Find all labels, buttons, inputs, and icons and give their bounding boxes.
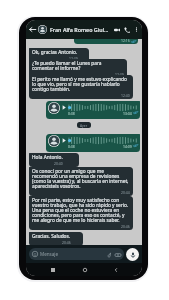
staticText: Ayer — [80, 123, 88, 127]
staticText: Hola Antonio. — [32, 154, 63, 161]
staticText: 12:39 — [115, 72, 124, 77]
staticText: 13:04 — [123, 111, 132, 116]
button[interactable]: More options — [132, 25, 141, 34]
staticText: Fran Alfa Romeo Giul… — [50, 26, 109, 33]
staticText: 20:44 — [121, 190, 130, 195]
button[interactable]: Por mi parte, estoy muy satisfecho con v… — [29, 196, 133, 230]
button[interactable]: 0:38 — [46, 101, 140, 119]
staticText: 20:46 — [121, 224, 130, 229]
staticText: 12:39 — [69, 56, 78, 61]
button[interactable]: Back — [27, 24, 38, 35]
button[interactable]: Video call — [112, 25, 122, 35]
button[interactable]: Recent apps — [47, 264, 58, 275]
button[interactable]: 0:38 — [46, 134, 140, 152]
staticText: Por mi parte, estoy muy satisfecho con v… — [32, 197, 130, 224]
staticText: El perito me llamó y me estuvo explicand… — [32, 76, 130, 93]
staticText: 12:40 — [121, 93, 130, 98]
staticText: Os conocí por un amigo que me recomendó … — [32, 168, 130, 190]
staticText: 20:40 — [54, 161, 63, 166]
button[interactable]: Back — [110, 264, 121, 275]
button[interactable]: Attach file — [105, 251, 112, 258]
staticText: 14:09 — [123, 144, 132, 149]
button[interactable]: Home — [79, 264, 90, 275]
button[interactable]: Camera — [114, 251, 121, 258]
staticText: Mensaje — [40, 251, 59, 257]
button[interactable]: Voice call — [122, 25, 132, 35]
staticText: Gracias. Saludos. — [32, 233, 71, 240]
button[interactable]: Hola Antonio. — [29, 153, 79, 167]
button[interactable]: Ok, gracias Antonio. — [29, 48, 89, 62]
staticText: 0:38 — [68, 144, 75, 149]
button[interactable]: ¿Te puedo llamar el Lunes para comentar … — [29, 59, 127, 78]
button[interactable]: Mensaje — [29, 248, 124, 260]
staticText: 0:38 — [68, 111, 75, 116]
staticText: 12:16 — [121, 38, 130, 43]
button[interactable]: Os conocí por un amigo que me recomendó … — [29, 167, 133, 196]
button[interactable]: Gracias. Saludos. — [29, 232, 83, 246]
button[interactable]: El perito me llamó y me estuvo explicand… — [29, 75, 133, 99]
staticText: Ok, gracias Antonio. — [32, 49, 78, 56]
button[interactable]: Record voice message — [126, 248, 139, 261]
staticText: ¿Te puedo llamar el Lunes para comentar … — [32, 60, 124, 72]
staticText: 20:46 — [62, 240, 71, 245]
